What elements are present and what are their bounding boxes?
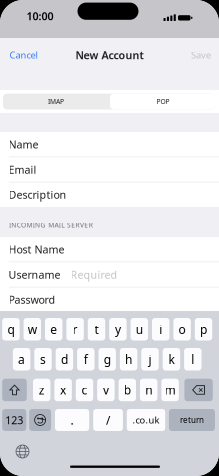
staticText: Cancel (9, 49, 37, 61)
staticText: Save (191, 49, 211, 61)
staticText: Name (9, 137, 39, 151)
staticText: c (81, 382, 87, 398)
staticText: / (106, 412, 110, 428)
staticText: IMAP (48, 97, 64, 106)
staticText: f (84, 351, 88, 367)
button[interactable]: r (66, 318, 84, 340)
button[interactable]: f (77, 348, 94, 370)
staticText: b (124, 382, 131, 398)
button[interactable]: .co.uk (127, 409, 165, 431)
button[interactable]: p (195, 318, 212, 340)
staticText: m (165, 382, 176, 398)
button[interactable]: c (76, 379, 93, 401)
button[interactable]: Cancel (9, 44, 53, 66)
button[interactable]: Shift (2, 379, 27, 401)
button[interactable]: g (98, 348, 116, 370)
staticText: h (125, 351, 132, 367)
staticText: New Account (75, 48, 143, 62)
staticText: n (145, 382, 152, 398)
button[interactable]: m (161, 379, 179, 401)
button[interactable]: b (119, 379, 136, 401)
button[interactable]: Username (0, 262, 219, 287)
staticText: x (60, 382, 66, 398)
button[interactable]: Next keyboard (16, 445, 29, 458)
button[interactable]: k (163, 348, 180, 370)
button[interactable]: Email (0, 157, 219, 182)
button[interactable]: Save (181, 44, 211, 66)
staticText: 10:00 (26, 9, 53, 23)
button[interactable]: Host Name (0, 237, 219, 262)
button[interactable]: w (24, 318, 41, 340)
button[interactable]: s (34, 348, 52, 370)
button[interactable]: a (13, 348, 30, 370)
staticText: POP (156, 97, 169, 106)
staticText: i (159, 321, 162, 337)
button[interactable]: h (120, 348, 137, 370)
button[interactable]: n (140, 379, 157, 401)
button[interactable]: x (54, 379, 72, 401)
button[interactable]: Delete (184, 379, 213, 401)
button[interactable]: q (2, 318, 20, 340)
staticText: s (40, 351, 46, 367)
button[interactable]: u (131, 318, 148, 340)
staticText: Password (9, 293, 56, 307)
button[interactable]: Emoji (29, 409, 51, 431)
staticText: q (7, 321, 14, 337)
staticText: o (179, 321, 186, 337)
staticText: Description (9, 188, 67, 202)
staticText: t (94, 321, 98, 337)
staticText: p (200, 321, 207, 337)
staticText: Host Name (9, 242, 65, 256)
staticText: y (115, 321, 121, 337)
staticText: r (73, 321, 78, 337)
button[interactable]: t (88, 318, 105, 340)
staticText: g (104, 351, 111, 367)
staticText: d (61, 351, 68, 367)
button[interactable]: Password (0, 287, 219, 312)
button[interactable]: IMAP (3, 93, 109, 109)
staticText: Username (9, 267, 61, 282)
button[interactable]: Description (0, 182, 219, 207)
button[interactable]: y (109, 318, 127, 340)
button[interactable]: o (173, 318, 191, 340)
button[interactable]: l (184, 348, 201, 370)
staticText: e (50, 321, 57, 337)
button[interactable]: Name (0, 132, 219, 157)
staticText: v (103, 382, 109, 398)
button[interactable]: z (33, 379, 50, 401)
staticText: w (28, 321, 37, 337)
button[interactable]: return (169, 409, 215, 431)
button[interactable]: d (56, 348, 73, 370)
staticText: return (180, 415, 204, 425)
button[interactable]: j (141, 348, 159, 370)
button[interactable]: i (152, 318, 169, 340)
staticText: l (191, 351, 194, 367)
button[interactable]: POP (110, 93, 216, 109)
staticText: z (39, 382, 45, 398)
staticText: Required (71, 267, 118, 282)
staticText: u (136, 321, 143, 337)
staticText: a (18, 351, 25, 367)
staticText: k (168, 351, 174, 367)
staticText: . (71, 412, 74, 428)
button[interactable]: 123 (2, 409, 26, 431)
staticText: .co.uk (132, 414, 159, 426)
staticText: 123 (5, 413, 23, 427)
staticText: INCOMING MAIL SERVER (9, 221, 93, 229)
button[interactable]: v (97, 379, 115, 401)
staticText: Email (9, 162, 37, 177)
button[interactable]: / (93, 409, 123, 431)
button[interactable]: e (45, 318, 62, 340)
button[interactable]: . (55, 409, 89, 431)
staticText: j (148, 351, 151, 367)
